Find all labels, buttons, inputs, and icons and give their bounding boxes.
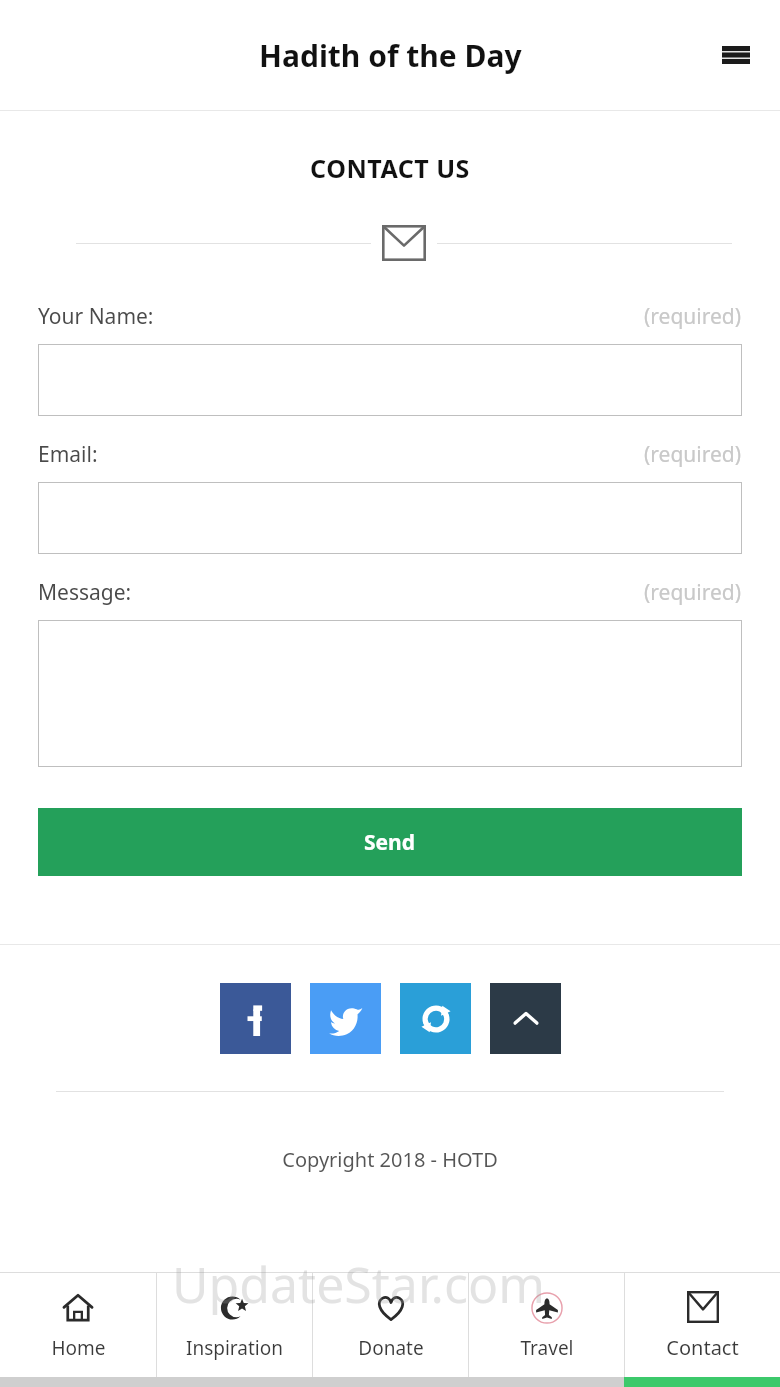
button[interactable]: Refresh	[400, 983, 471, 1054]
button[interactable]: Menu	[708, 27, 764, 83]
staticText: UpdateStar.com	[172, 1250, 545, 1318]
staticText: Your Name:	[38, 302, 154, 331]
button[interactable]	[38, 344, 742, 416]
button[interactable]: Twitter	[310, 983, 381, 1054]
button[interactable]: Home	[0, 1273, 156, 1377]
button[interactable]	[38, 620, 742, 767]
button[interactable]: Contact	[625, 1273, 780, 1377]
staticText: Hadith of the Day	[259, 35, 522, 76]
staticText: (required)	[644, 440, 742, 469]
staticText: Inspiration	[186, 1335, 283, 1361]
staticText: Travel	[520, 1335, 574, 1361]
staticText: (required)	[644, 578, 742, 607]
staticText: CONTACT US	[0, 151, 780, 185]
staticText: (required)	[644, 302, 742, 331]
staticText: Donate	[358, 1335, 424, 1361]
staticText: Copyright 2018 - HOTD	[0, 1146, 780, 1173]
staticText: Contact	[666, 1334, 739, 1361]
staticText: Home	[51, 1335, 106, 1361]
button[interactable]: Scroll to top	[490, 983, 561, 1054]
button[interactable]: Inspiration	[157, 1273, 312, 1377]
staticText: Message:	[38, 578, 132, 607]
staticText: Email:	[38, 440, 98, 469]
button[interactable]: Facebook	[220, 983, 291, 1054]
staticText: Send	[364, 828, 416, 857]
button[interactable]	[38, 482, 742, 554]
button[interactable]: Donate	[313, 1273, 468, 1377]
button[interactable]: Travel	[469, 1273, 624, 1377]
button[interactable]: Send	[38, 808, 742, 876]
